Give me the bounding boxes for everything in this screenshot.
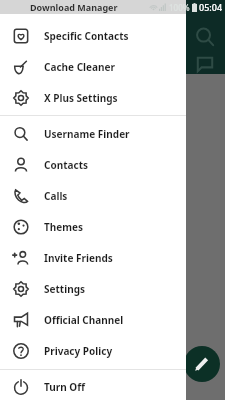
button[interactable]: Contacts: [0, 149, 186, 180]
button[interactable]: Settings: [0, 273, 186, 304]
staticText: Official Channel: [44, 313, 124, 327]
staticText: Turn Off: [44, 380, 85, 394]
staticText: Download Manager: [30, 1, 186, 13]
staticText: 05:04: [199, 1, 223, 13]
staticText: Username Finder: [44, 127, 130, 141]
staticText: Calls: [44, 189, 68, 203]
button[interactable]: Themes: [0, 211, 186, 242]
button[interactable]: New chat: [184, 346, 220, 382]
staticText: Settings: [44, 282, 85, 296]
staticText: Privacy Policy: [44, 344, 113, 358]
button[interactable]: Search: [193, 25, 217, 49]
button[interactable]: Messages: [193, 52, 217, 76]
button[interactable]: Official Channel: [0, 304, 186, 335]
button[interactable]: Turn Off: [0, 373, 186, 400]
staticText: Contacts: [44, 158, 89, 172]
button[interactable]: Cache Cleaner: [0, 51, 186, 82]
staticText: Cache Cleaner: [44, 60, 115, 74]
button[interactable]: Calls: [0, 180, 186, 211]
button[interactable]: Specific Contacts: [0, 20, 186, 51]
staticText: X Plus Settings: [44, 91, 118, 105]
button[interactable]: Username Finder: [0, 118, 186, 149]
staticText: Invite Friends: [44, 251, 113, 265]
button[interactable]: X Plus Settings: [0, 82, 186, 113]
button[interactable]: Invite Friends: [0, 242, 186, 273]
staticText: 100%: [169, 2, 190, 13]
button[interactable]: Privacy Policy: [0, 335, 186, 366]
staticText: Themes: [44, 220, 83, 234]
staticText: Specific Contacts: [44, 29, 129, 43]
